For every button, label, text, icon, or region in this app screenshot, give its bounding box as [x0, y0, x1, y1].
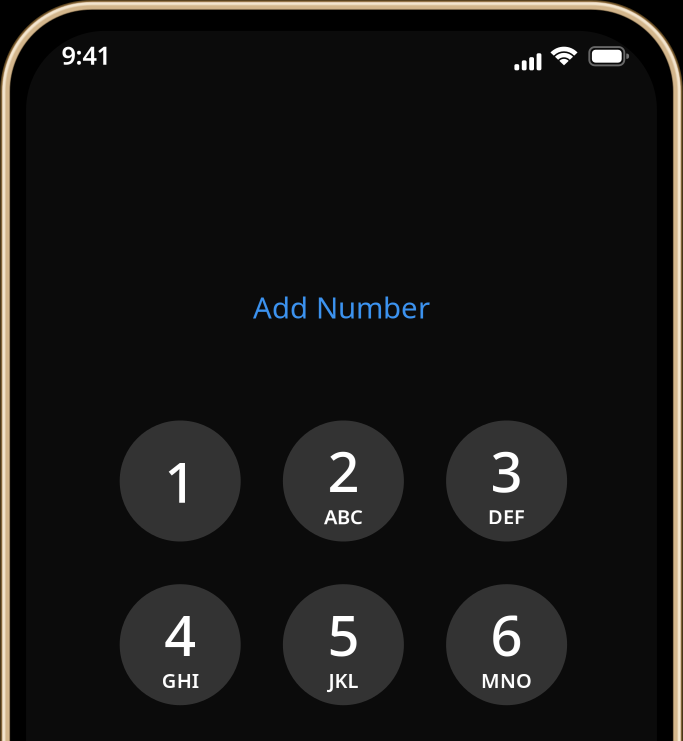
button[interactable]: 3 DEF: [446, 420, 567, 541]
button[interactable]: 4 GHI: [120, 584, 241, 705]
staticText: MNO: [481, 667, 532, 693]
staticText: DEF: [488, 503, 525, 530]
staticText: ABC: [324, 503, 363, 530]
staticText: 6: [491, 597, 523, 671]
button[interactable]: 1: [120, 420, 241, 541]
staticText: Add Number: [253, 287, 430, 326]
button[interactable]: Add Number: [211, 284, 471, 330]
button[interactable]: 5 JKL: [283, 584, 404, 705]
button[interactable]: 2 ABC: [283, 420, 404, 541]
button[interactable]: 6 MNO: [446, 584, 567, 705]
staticText: GHI: [162, 667, 199, 693]
staticText: 4: [164, 597, 196, 671]
staticText: JKL: [328, 667, 358, 693]
staticText: 1: [164, 444, 196, 518]
staticText: 9:41: [61, 38, 110, 72]
staticText: 5: [327, 597, 359, 671]
staticText: 2: [327, 433, 359, 508]
staticText: 3: [491, 433, 523, 508]
